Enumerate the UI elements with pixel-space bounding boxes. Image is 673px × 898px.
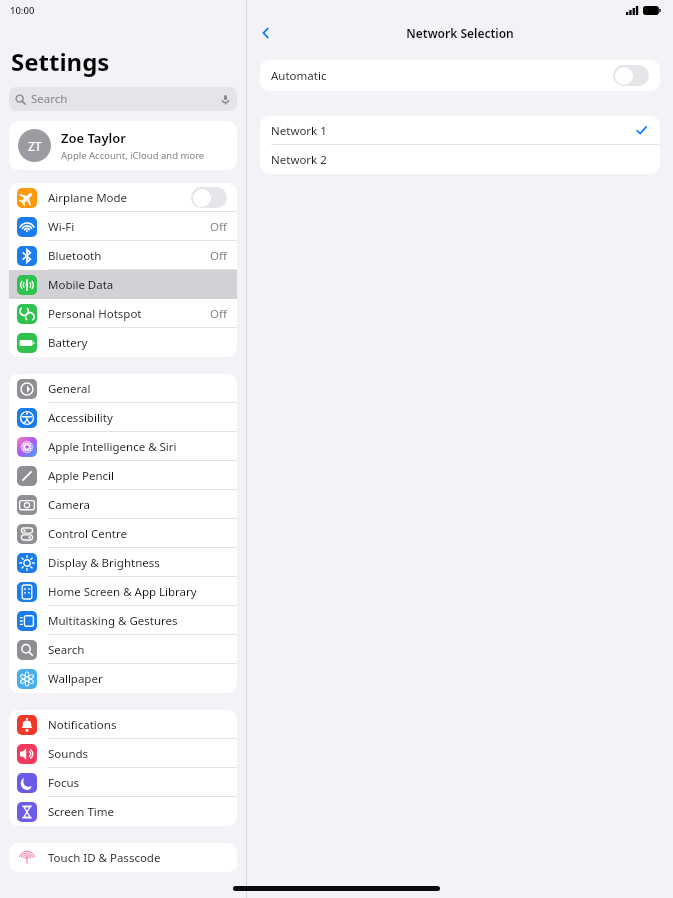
staticText: Camera bbox=[48, 497, 227, 513]
button[interactable]: Accessibility bbox=[9, 403, 237, 432]
staticText: Automatic bbox=[271, 68, 613, 84]
button[interactable]: Bluetooth bbox=[9, 241, 237, 270]
staticText: Apple Pencil bbox=[48, 468, 227, 484]
button[interactable]: Notifications bbox=[9, 710, 237, 739]
staticText: Home Screen & App Library bbox=[48, 584, 227, 600]
button[interactable]: Touch ID & Passcode bbox=[9, 843, 237, 872]
staticText: Bluetooth bbox=[48, 248, 210, 264]
button[interactable]: Toggle switch bbox=[191, 187, 227, 208]
button[interactable]: Apple Intelligence & Siri bbox=[9, 432, 237, 461]
staticText: Off bbox=[210, 306, 227, 322]
button[interactable]: Control Centre bbox=[9, 519, 237, 548]
button[interactable]: Multitasking & Gestures bbox=[9, 606, 237, 635]
staticText: Search bbox=[31, 91, 220, 107]
staticText: Accessibility bbox=[48, 410, 227, 426]
staticText: Control Centre bbox=[48, 526, 227, 542]
staticText: Personal Hotspot bbox=[48, 306, 210, 322]
button[interactable]: Home Screen & App Library bbox=[9, 577, 237, 606]
staticText: Apple Intelligence & Siri bbox=[48, 439, 227, 455]
staticText: Touch ID & Passcode bbox=[48, 850, 227, 866]
staticText: Network 2 bbox=[271, 152, 327, 168]
button[interactable]: ZT bbox=[9, 121, 237, 170]
button[interactable]: Personal Hotspot bbox=[9, 299, 237, 328]
staticText: Network 1 bbox=[271, 123, 635, 139]
staticText: Wi-Fi bbox=[48, 219, 210, 235]
button[interactable]: Camera bbox=[9, 490, 237, 519]
button[interactable]: Battery bbox=[9, 328, 237, 357]
button[interactable]: Search bbox=[9, 87, 237, 111]
staticText: Mobile Data bbox=[48, 277, 227, 293]
staticText: Sounds bbox=[48, 746, 227, 762]
staticText: Airplane Mode bbox=[48, 190, 191, 206]
button[interactable]: Wi-Fi bbox=[9, 212, 237, 241]
staticText: Battery bbox=[48, 335, 227, 351]
staticText: 10:00 bbox=[10, 4, 35, 17]
button[interactable]: Sounds bbox=[9, 739, 237, 768]
button[interactable]: Back bbox=[253, 20, 279, 46]
staticText: Off bbox=[210, 248, 227, 264]
staticText: Focus bbox=[48, 775, 227, 791]
button[interactable]: Airplane Mode bbox=[9, 183, 237, 212]
button[interactable]: Display & Brightness bbox=[9, 548, 237, 577]
button[interactable]: Network 2 bbox=[260, 145, 660, 174]
button[interactable]: Search bbox=[9, 635, 237, 664]
staticText: Display & Brightness bbox=[48, 555, 227, 571]
button[interactable]: General bbox=[9, 374, 237, 403]
staticText: Off bbox=[210, 219, 227, 235]
staticText: Notifications bbox=[48, 717, 227, 733]
staticText: Settings bbox=[11, 45, 110, 78]
button[interactable]: Focus bbox=[9, 768, 237, 797]
button[interactable]: Wallpaper bbox=[9, 664, 237, 693]
staticText: Zoe Taylor bbox=[61, 129, 126, 147]
staticText: Multitasking & Gestures bbox=[48, 613, 227, 629]
button[interactable]: Toggle switch bbox=[613, 65, 649, 86]
button[interactable]: Automatic bbox=[260, 60, 660, 91]
button[interactable]: Mobile Data bbox=[9, 270, 237, 299]
button[interactable]: Screen Time bbox=[9, 797, 237, 826]
staticText: Screen Time bbox=[48, 804, 227, 820]
staticText: Search bbox=[48, 642, 227, 658]
staticText: Network Selection bbox=[406, 25, 514, 41]
staticText: General bbox=[48, 381, 227, 397]
staticText: Wallpaper bbox=[48, 671, 227, 687]
button[interactable]: Apple Pencil bbox=[9, 461, 237, 490]
button[interactable]: Network 1 bbox=[260, 116, 660, 145]
staticText: Apple Account, iCloud and more bbox=[61, 149, 205, 162]
staticText: ZT bbox=[28, 138, 42, 154]
